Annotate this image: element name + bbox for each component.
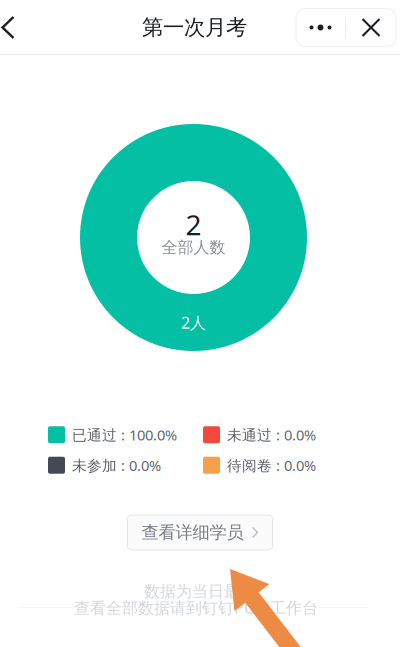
staticText: 2 xyxy=(185,206,201,243)
button[interactable]: More options xyxy=(296,8,345,46)
staticText: 第一次月考 xyxy=(142,14,247,41)
staticText: 2人 xyxy=(181,312,206,333)
button[interactable]: Close xyxy=(346,8,396,46)
staticText: 未通过 : 0.0% xyxy=(227,425,316,444)
button[interactable]: Back xyxy=(0,4,16,50)
staticText: 已通过 : 100.0% xyxy=(72,425,177,444)
staticText: 未参加 : 0.0% xyxy=(72,455,161,475)
staticText: 查看全部数据请到钉钉PC端工作台 xyxy=(74,597,318,618)
staticText: 全部人数 xyxy=(161,238,225,257)
button[interactable]: 查看详细学员 xyxy=(127,515,272,550)
staticText: 数据为当日最新 xyxy=(144,582,256,601)
staticText: 查看详细学员 xyxy=(141,522,243,543)
staticText: 待阅卷 : 0.0% xyxy=(227,455,316,475)
